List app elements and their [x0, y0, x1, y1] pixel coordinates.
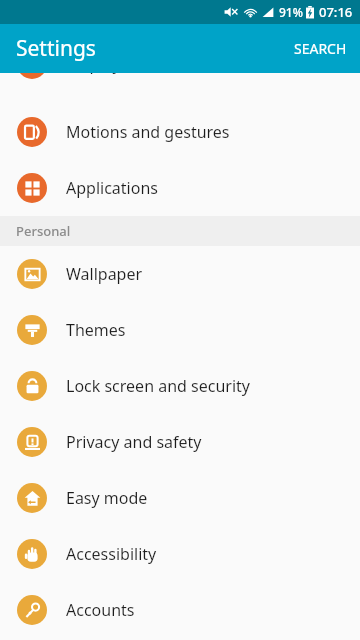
- staticText: Themes: [66, 319, 126, 341]
- staticText: Wallpaper: [66, 263, 143, 285]
- staticText: Privacy and safety: [66, 431, 202, 453]
- staticText: SEARCH: [294, 39, 347, 58]
- button[interactable]: Easy mode: [0, 470, 360, 526]
- staticText: Motions and gestures: [66, 121, 230, 143]
- staticText: Settings: [16, 34, 96, 63]
- button[interactable]: Privacy and safety: [0, 414, 360, 470]
- button[interactable]: Lock screen and security: [0, 358, 360, 414]
- staticText: Display: [66, 73, 121, 75]
- staticText: Applications: [66, 177, 158, 199]
- button[interactable]: Wallpaper: [0, 246, 360, 302]
- staticText: 91%: [279, 4, 303, 20]
- button[interactable]: Accounts: [0, 582, 360, 638]
- staticText: Accessibility: [66, 543, 157, 565]
- button[interactable]: Display: [0, 73, 360, 104]
- button[interactable]: Themes: [0, 302, 360, 358]
- button[interactable]: Accessibility: [0, 526, 360, 582]
- button[interactable]: Applications: [0, 160, 360, 216]
- button[interactable]: Motions and gestures: [0, 104, 360, 160]
- staticText: Accounts: [66, 599, 135, 621]
- staticText: Easy mode: [66, 487, 148, 509]
- button[interactable]: SEARCH: [281, 25, 360, 72]
- staticText: Lock screen and security: [66, 375, 250, 397]
- staticText: 07:16: [319, 3, 353, 21]
- staticText: Personal: [16, 222, 71, 240]
